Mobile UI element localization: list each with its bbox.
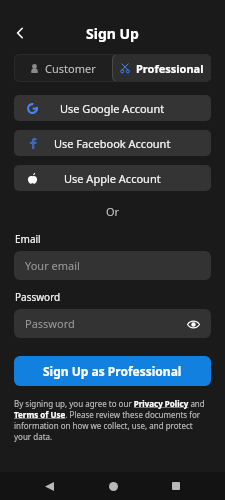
staticText: By signing up, you agree to our Privacy …	[14, 398, 211, 442]
button[interactable]: Your email	[14, 251, 211, 280]
button[interactable]: Use Facebook Account	[14, 130, 211, 156]
button[interactable]: Customer	[14, 54, 112, 82]
staticText: Use Google Account	[60, 101, 165, 116]
staticText: Use Apple Account	[64, 171, 161, 186]
button[interactable]: Back	[35, 472, 63, 500]
staticText: Password	[25, 316, 75, 331]
button[interactable]: Professional	[112, 54, 211, 82]
button[interactable]: Home	[99, 472, 127, 500]
staticText: Sign Up as Professional	[43, 363, 182, 379]
staticText: Your email	[25, 258, 80, 273]
button[interactable]: Sign Up as Professional	[14, 356, 211, 386]
staticText: Use Facebook Account	[54, 136, 171, 151]
staticText: Sign Up	[86, 24, 139, 43]
button[interactable]: Use Apple Account	[14, 165, 211, 191]
button[interactable]: Show password	[182, 313, 204, 335]
staticText: Password	[15, 290, 61, 304]
button[interactable]: Use Google Account	[14, 95, 211, 121]
button[interactable]: Back	[8, 21, 32, 45]
button[interactable]: Password	[14, 309, 211, 338]
staticText: Or	[0, 204, 225, 219]
staticText: Email	[15, 232, 41, 246]
staticText: Professional	[136, 61, 204, 76]
staticText: Customer	[45, 61, 96, 76]
button[interactable]: Recents	[162, 472, 190, 500]
